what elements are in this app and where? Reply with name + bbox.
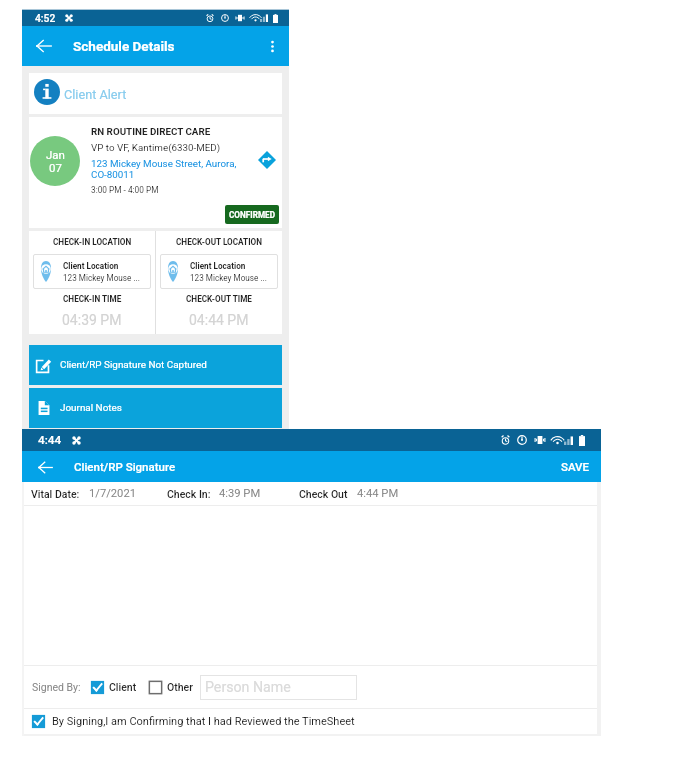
- staticText: Check Out: [299, 488, 348, 500]
- staticText: Client Location: [63, 261, 119, 271]
- button[interactable]: Journal Notes: [29, 388, 282, 428]
- button[interactable]: SAVE: [551, 454, 600, 479]
- staticText: Signed By:: [32, 681, 81, 693]
- button[interactable]: By Signing,I am Confirming that I had Re…: [31, 709, 601, 734]
- staticText: 3:00 PM - 4:00 PM: [91, 185, 159, 195]
- staticText: 123 Mickey Mouse Street, Aurora,: [91, 158, 237, 169]
- staticText: 123 Mickey Mouse ...: [63, 273, 140, 283]
- button[interactable]: Client Location: [160, 254, 278, 289]
- staticText: SAVE: [561, 460, 590, 473]
- staticText: Client/RP Signature Not Captured: [60, 359, 207, 371]
- staticText: Client Location: [190, 261, 246, 271]
- button[interactable]: Client/RP Signature Not Captured: [29, 345, 282, 385]
- staticText: 4:44 PM: [357, 487, 399, 500]
- button[interactable]: Client checkbox: [90, 680, 105, 695]
- staticText: 4:52: [35, 12, 56, 24]
- staticText: Jan: [46, 148, 65, 161]
- staticText: Vital Date:: [31, 488, 80, 500]
- staticText: CHECK-OUT TIME: [186, 294, 252, 304]
- staticText: CHECK-IN TIME: [63, 294, 122, 304]
- staticText: Client Alert: [64, 87, 127, 102]
- button[interactable]: Back: [34, 456, 56, 478]
- staticText: RN ROUTINE DIRECT CARE: [91, 126, 211, 137]
- button[interactable]: Directions: [252, 142, 282, 178]
- staticText: Journal Notes: [60, 402, 122, 414]
- staticText: 04:39 PM: [62, 312, 122, 328]
- staticText: CHECK-IN LOCATION: [53, 237, 132, 247]
- staticText: Check In:: [167, 488, 211, 500]
- staticText: Person Name: [205, 679, 291, 696]
- button[interactable]: Client Alert: [29, 73, 282, 114]
- staticText: 4:44: [38, 433, 62, 447]
- staticText: Client: [109, 681, 137, 693]
- staticText: Other: [167, 681, 193, 693]
- staticText: CONFIRMED: [229, 210, 276, 220]
- staticText: 04:44 PM: [189, 312, 249, 328]
- staticText: CO-80011: [91, 169, 135, 180]
- staticText: 07: [49, 161, 62, 174]
- staticText: By Signing,I am Confirming that I had Re…: [52, 715, 355, 728]
- staticText: 1/7/2021: [89, 487, 136, 500]
- button[interactable]: Back: [32, 34, 56, 58]
- button[interactable]: 123 Mickey Mouse Street, Aurora,: [91, 158, 237, 180]
- staticText: Schedule Details: [73, 38, 175, 54]
- staticText: 123 Mickey Mouse ...: [190, 273, 267, 283]
- staticText: VP to VF, Kantime(6330-MED): [91, 142, 221, 153]
- button[interactable]: Client Location: [33, 254, 151, 289]
- staticText: CHECK-OUT LOCATION: [176, 237, 263, 247]
- button[interactable]: Other checkbox: [148, 680, 163, 695]
- button[interactable]: Person Name: [200, 675, 357, 700]
- staticText: Client/RP Signature: [74, 460, 176, 473]
- button[interactable]: CONFIRMED: [225, 205, 279, 224]
- button[interactable]: More options: [260, 34, 284, 58]
- staticText: 4:39 PM: [219, 487, 261, 500]
